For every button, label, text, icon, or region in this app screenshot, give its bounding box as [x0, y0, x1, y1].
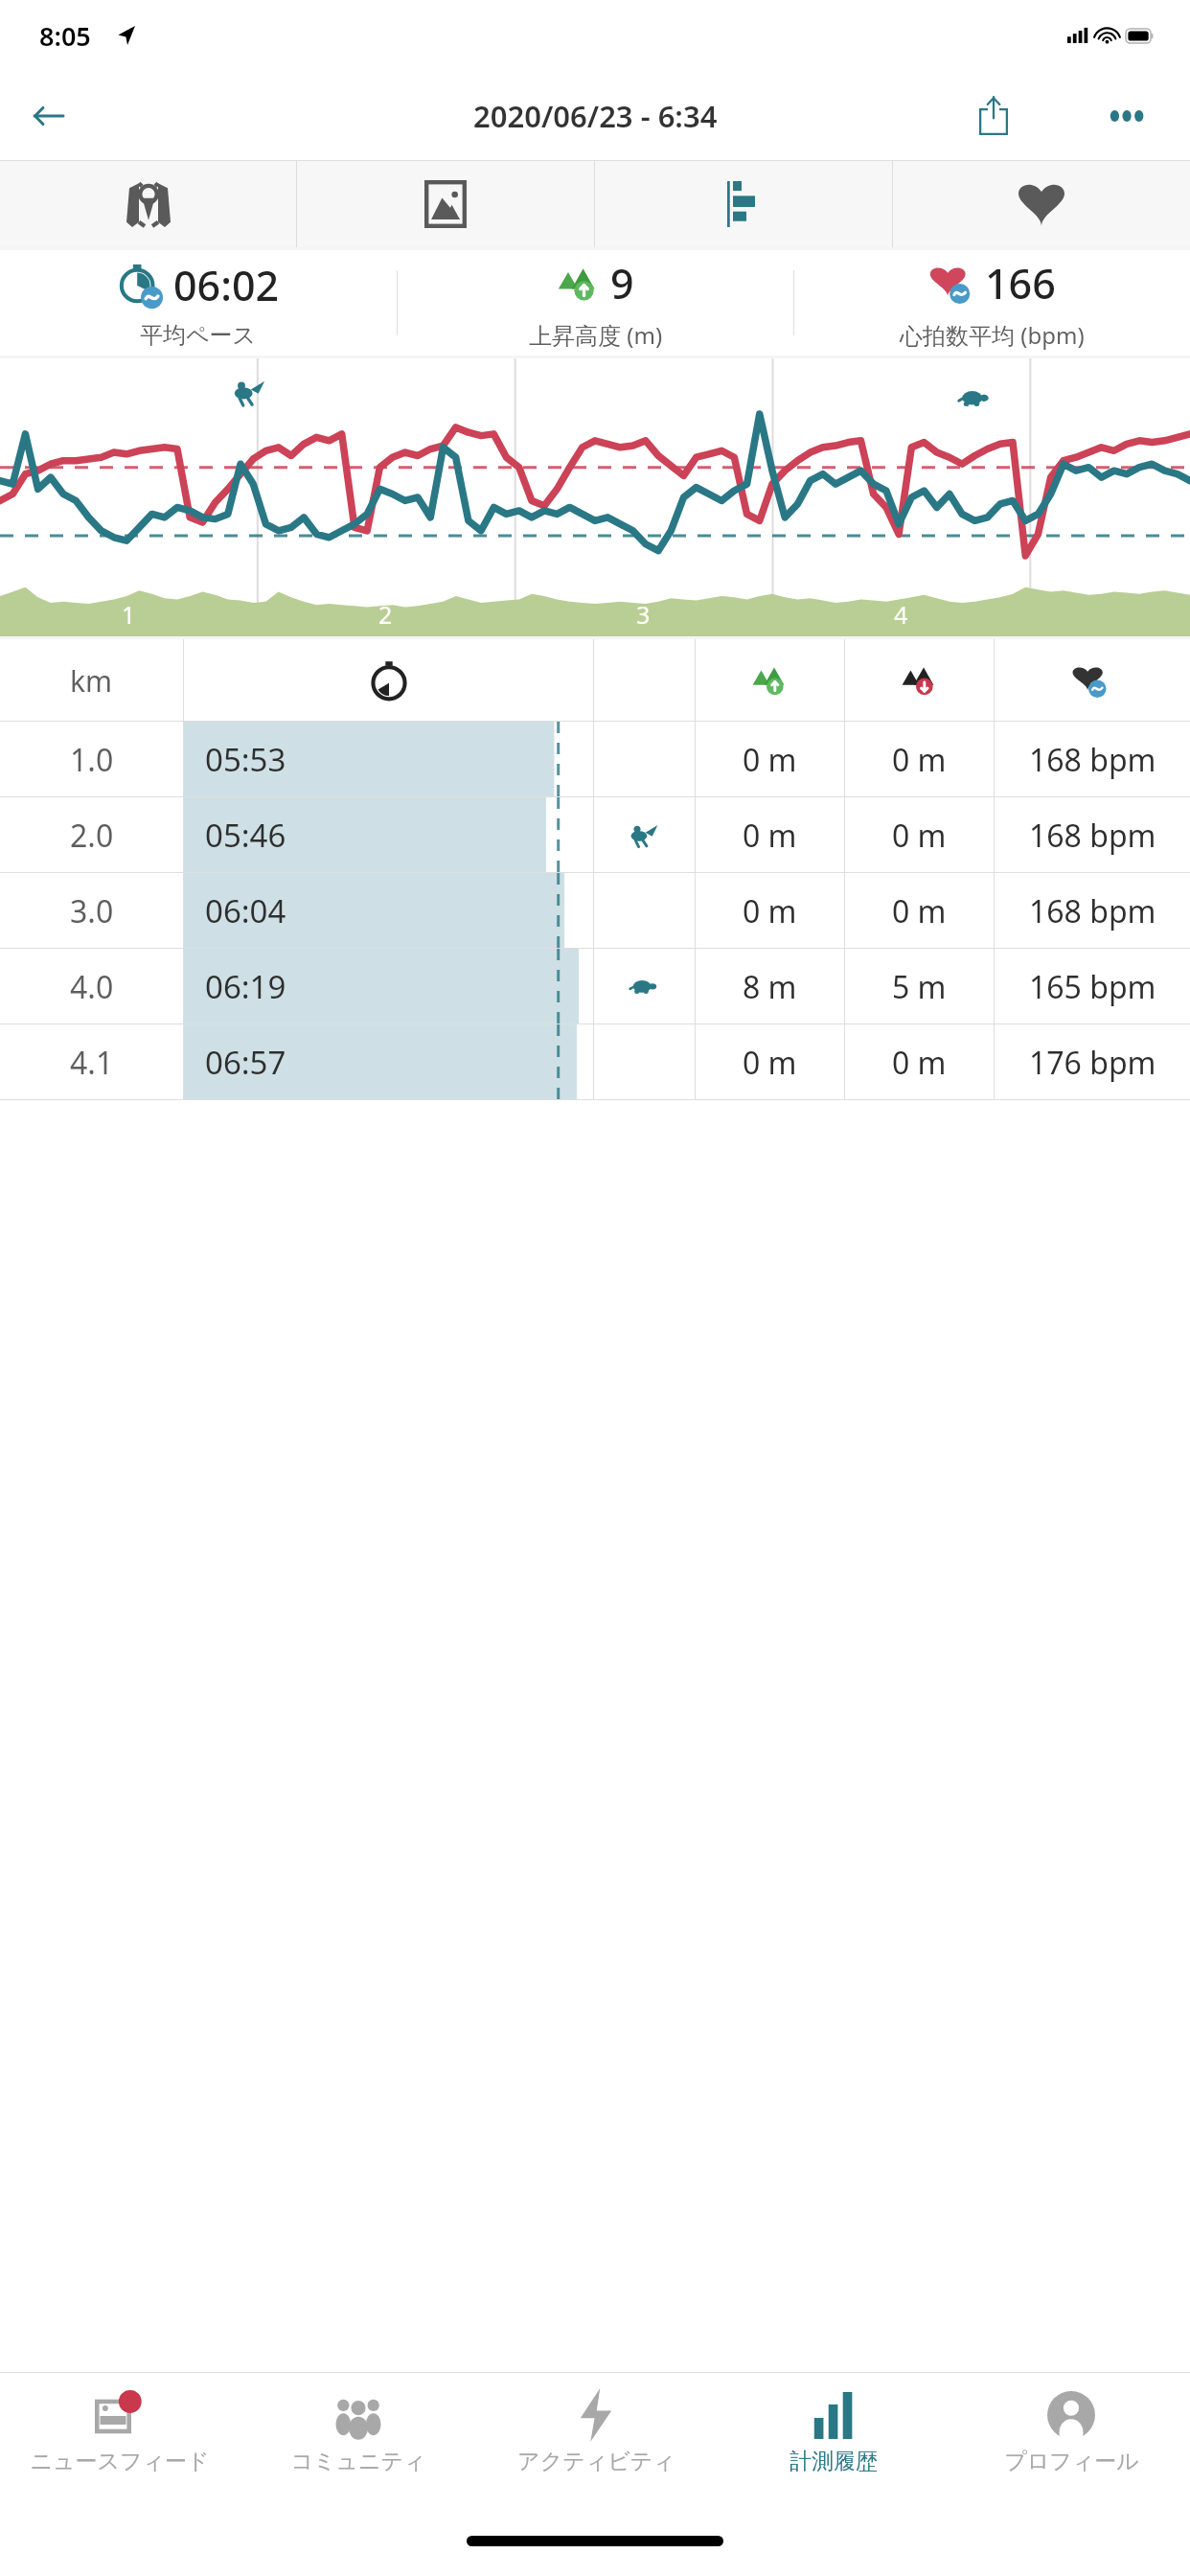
- staticText: 0 m: [892, 1042, 947, 1084]
- staticText: プロフィール: [1004, 2448, 1139, 2475]
- staticText: 0 m: [892, 890, 947, 932]
- staticText: km: [70, 661, 113, 701]
- button[interactable]: 2.0: [0, 797, 1190, 873]
- staticText: アクティビティ: [517, 2448, 675, 2475]
- button[interactable]: Heart rate: [893, 160, 1190, 247]
- staticText: ニュースフィード: [30, 2448, 210, 2475]
- staticText: 2020/06/23 - 6:34: [473, 96, 718, 136]
- staticText: 3: [636, 598, 651, 631]
- button[interactable]: 4.1: [0, 1024, 1190, 1100]
- staticText: 168 bpm: [1029, 890, 1156, 932]
- staticText: 上昇高度 (m): [529, 319, 663, 351]
- staticText: 心拍数平均 (bpm): [900, 319, 1085, 351]
- staticText: 5 m: [892, 966, 947, 1008]
- staticText: 平均ペース: [140, 321, 257, 350]
- staticText: 4: [894, 598, 908, 631]
- button[interactable]: 1.0: [0, 722, 1190, 797]
- staticText: 168 bpm: [1029, 815, 1156, 857]
- staticText: 0 m: [743, 739, 797, 781]
- staticText: 166: [985, 255, 1056, 311]
- staticText: 06:04: [205, 889, 286, 932]
- staticText: 0 m: [743, 1042, 797, 1084]
- staticText: 計測履歴: [790, 2448, 878, 2475]
- staticText: 9: [610, 255, 634, 311]
- button[interactable]: 9: [398, 250, 793, 356]
- button[interactable]: More options: [1096, 84, 1159, 148]
- staticText: 06:19: [205, 965, 286, 1008]
- staticText: 168 bpm: [1029, 739, 1156, 781]
- button[interactable]: 1: [0, 358, 1190, 636]
- staticText: 1.0: [70, 739, 114, 781]
- staticText: 0 m: [743, 890, 797, 932]
- staticText: 06:02: [173, 257, 280, 313]
- button[interactable]: ニュースフィード: [0, 2373, 239, 2517]
- staticText: 8:05: [39, 18, 91, 54]
- staticText: 176 bpm: [1029, 1042, 1156, 1084]
- staticText: 2: [378, 598, 393, 631]
- button[interactable]: 166: [794, 250, 1190, 356]
- button[interactable]: Back: [17, 86, 77, 146]
- staticText: 3.0: [70, 890, 114, 932]
- button[interactable]: アクティビティ: [477, 2373, 715, 2517]
- staticText: 0 m: [892, 815, 947, 857]
- button[interactable]: プロフィール: [952, 2373, 1190, 2517]
- staticText: 05:53: [205, 738, 286, 781]
- staticText: 4.1: [70, 1042, 114, 1084]
- button[interactable]: 3.0: [0, 873, 1190, 949]
- button[interactable]: Map: [0, 160, 296, 247]
- staticText: 8 m: [743, 966, 797, 1008]
- button[interactable]: Photos: [297, 160, 594, 247]
- button[interactable]: Share: [962, 84, 1025, 148]
- staticText: コミュニティ: [290, 2448, 426, 2475]
- button[interactable]: 06:02: [0, 250, 397, 356]
- button[interactable]: 4.0: [0, 949, 1190, 1024]
- staticText: 4.0: [70, 966, 114, 1008]
- staticText: 165 bpm: [1029, 966, 1156, 1008]
- button[interactable]: Splits: [595, 160, 892, 247]
- button[interactable]: コミュニティ: [239, 2373, 477, 2517]
- staticText: 0 m: [892, 739, 947, 781]
- staticText: 06:57: [205, 1041, 286, 1084]
- button[interactable]: 計測履歴: [715, 2373, 952, 2517]
- staticText: 05:46: [205, 814, 286, 857]
- staticText: 1: [122, 598, 136, 631]
- staticText: 0 m: [743, 815, 797, 857]
- staticText: 2.0: [70, 815, 114, 857]
